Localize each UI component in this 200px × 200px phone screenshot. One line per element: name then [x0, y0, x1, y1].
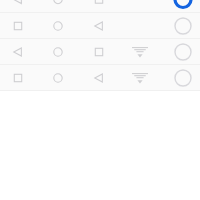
button[interactable] — [0, 65, 200, 91]
other: Navigation style option 4 — [0, 65, 200, 91]
button[interactable] — [0, 13, 200, 39]
button[interactable] — [0, 39, 200, 65]
button[interactable]: Navigation style option 1, selected — [0, 0, 200, 13]
other: Navigation style option 2 — [0, 13, 200, 39]
other: Navigation style option 3 — [0, 39, 200, 65]
